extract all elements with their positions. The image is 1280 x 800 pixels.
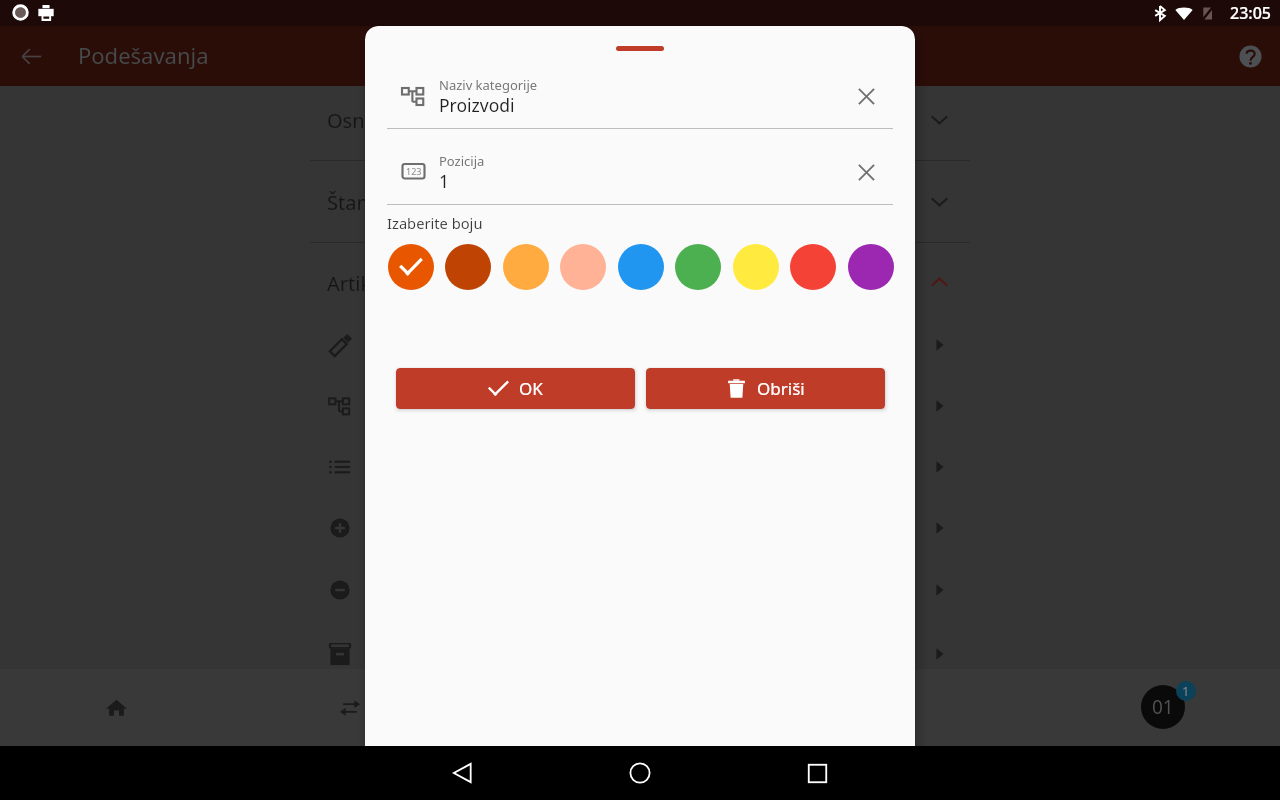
button[interactable]: Color option 2 xyxy=(445,244,491,290)
staticText: 01 xyxy=(1152,694,1174,720)
staticText: 123 xyxy=(406,165,422,177)
staticText: Osnovno xyxy=(327,107,411,134)
staticText: Obriši xyxy=(757,377,805,400)
button[interactable]: Clear xyxy=(845,75,887,117)
button[interactable]: Color option 3 xyxy=(503,244,549,290)
button[interactable]: Transfer xyxy=(332,690,367,725)
button[interactable]: Obriši xyxy=(646,368,885,409)
staticText: Pozicija xyxy=(439,152,485,170)
button[interactable] xyxy=(310,451,970,483)
button[interactable]: Artikli xyxy=(310,261,970,305)
button[interactable]: OK xyxy=(396,368,635,409)
button[interactable]: Color option 6 xyxy=(675,244,721,290)
staticText: 23:05 xyxy=(1230,2,1271,24)
button[interactable]: Home xyxy=(99,690,134,725)
staticText: Izaberite boju xyxy=(387,213,483,233)
button[interactable]: Color option 1 xyxy=(388,244,434,290)
button[interactable] xyxy=(310,574,970,606)
staticText: Proizvodi xyxy=(439,93,515,117)
staticText: 1 xyxy=(1182,682,1190,700)
button[interactable]: Color option 9 xyxy=(848,244,894,290)
button[interactable] xyxy=(310,638,970,670)
button[interactable]: Back xyxy=(14,39,48,73)
button[interactable]: Color option 8 xyxy=(790,244,836,290)
button[interactable]: Color option 7 xyxy=(733,244,779,290)
staticText: Podešavanja xyxy=(78,40,209,70)
staticText: Artikli xyxy=(327,270,382,297)
staticText: Naziv kategorije xyxy=(439,76,538,94)
button[interactable]: Clear xyxy=(845,151,887,193)
button[interactable]: Back xyxy=(451,761,475,785)
button[interactable]: Štampa xyxy=(310,180,970,224)
button[interactable]: Help xyxy=(1233,39,1267,73)
staticText: Štampa xyxy=(327,189,399,216)
button[interactable] xyxy=(310,390,970,422)
button[interactable]: Home xyxy=(628,761,652,785)
button[interactable] xyxy=(310,512,970,544)
button[interactable]: Color option 5 xyxy=(618,244,664,290)
button[interactable]: Counter 01 xyxy=(1141,685,1185,729)
button[interactable]: Color option 4 xyxy=(560,244,606,290)
button[interactable]: Osnovno xyxy=(310,98,970,142)
button[interactable] xyxy=(310,329,970,361)
staticText: 1 xyxy=(439,169,450,193)
staticText: OK xyxy=(519,377,543,400)
button[interactable]: Recents xyxy=(806,762,829,785)
